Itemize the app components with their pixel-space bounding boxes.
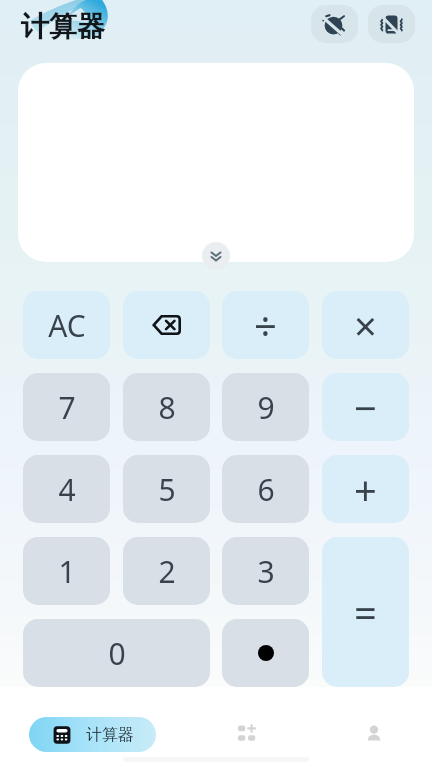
button[interactable]: 5	[123, 455, 210, 523]
button[interactable]: =	[322, 537, 409, 687]
staticText: 5	[158, 469, 176, 510]
staticText: 计算器	[86, 725, 134, 745]
staticText: 1	[58, 551, 76, 592]
button[interactable]: Profile	[358, 718, 390, 750]
staticText: 0	[108, 633, 126, 674]
staticText: 4	[58, 469, 76, 510]
button[interactable]: ×	[322, 291, 409, 359]
button[interactable]: 4	[23, 455, 110, 523]
button[interactable]: −	[322, 373, 409, 441]
staticText: ×	[354, 298, 377, 352]
staticText: 8	[158, 387, 176, 428]
staticText: 计算器	[21, 9, 105, 44]
button[interactable]: Vibration off	[368, 5, 415, 43]
button[interactable]: Backspace	[123, 291, 210, 359]
button[interactable]: 8	[123, 373, 210, 441]
button[interactable]: 9	[222, 373, 309, 441]
button[interactable]: 1	[23, 537, 110, 605]
staticText: 9	[257, 387, 275, 428]
staticText: −	[354, 380, 377, 434]
button[interactable]: Decimal point	[222, 619, 309, 687]
staticText: 7	[58, 387, 76, 428]
button[interactable]: Sound off	[311, 5, 358, 43]
staticText: 6	[257, 469, 275, 510]
staticText: 3	[257, 551, 275, 592]
button[interactable]: Expand history	[202, 242, 230, 270]
button[interactable]: 3	[222, 537, 309, 605]
button[interactable]: 7	[23, 373, 110, 441]
button[interactable]: ÷	[222, 291, 309, 359]
button[interactable]: Widgets	[232, 718, 264, 750]
staticText: ÷	[254, 298, 277, 352]
button[interactable]: AC	[23, 291, 110, 359]
staticText: =	[354, 585, 377, 639]
staticText: AC	[48, 305, 86, 346]
staticText: +	[354, 462, 377, 516]
button[interactable]: 0	[23, 619, 210, 687]
button[interactable]: 2	[123, 537, 210, 605]
button[interactable]: 计算器	[29, 717, 156, 752]
button[interactable]: 6	[222, 455, 309, 523]
button[interactable]: +	[322, 455, 409, 523]
staticText: 2	[158, 551, 176, 592]
